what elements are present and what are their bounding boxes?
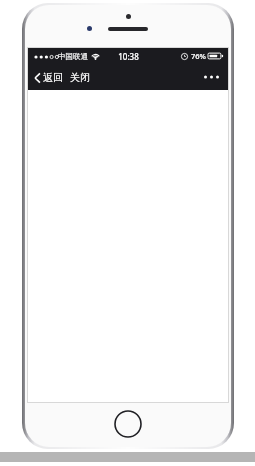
button[interactable]: Home [114,410,142,438]
staticText: 关闭 [70,71,90,84]
button[interactable]: More options [201,69,222,85]
staticText: 返回 [43,71,63,84]
staticText: 76% [191,51,206,61]
button[interactable]: 关闭 [68,68,92,87]
staticText: 10:38 [118,51,139,62]
button[interactable]: 返回 [32,68,65,87]
staticText: 中国联通 [58,52,88,61]
